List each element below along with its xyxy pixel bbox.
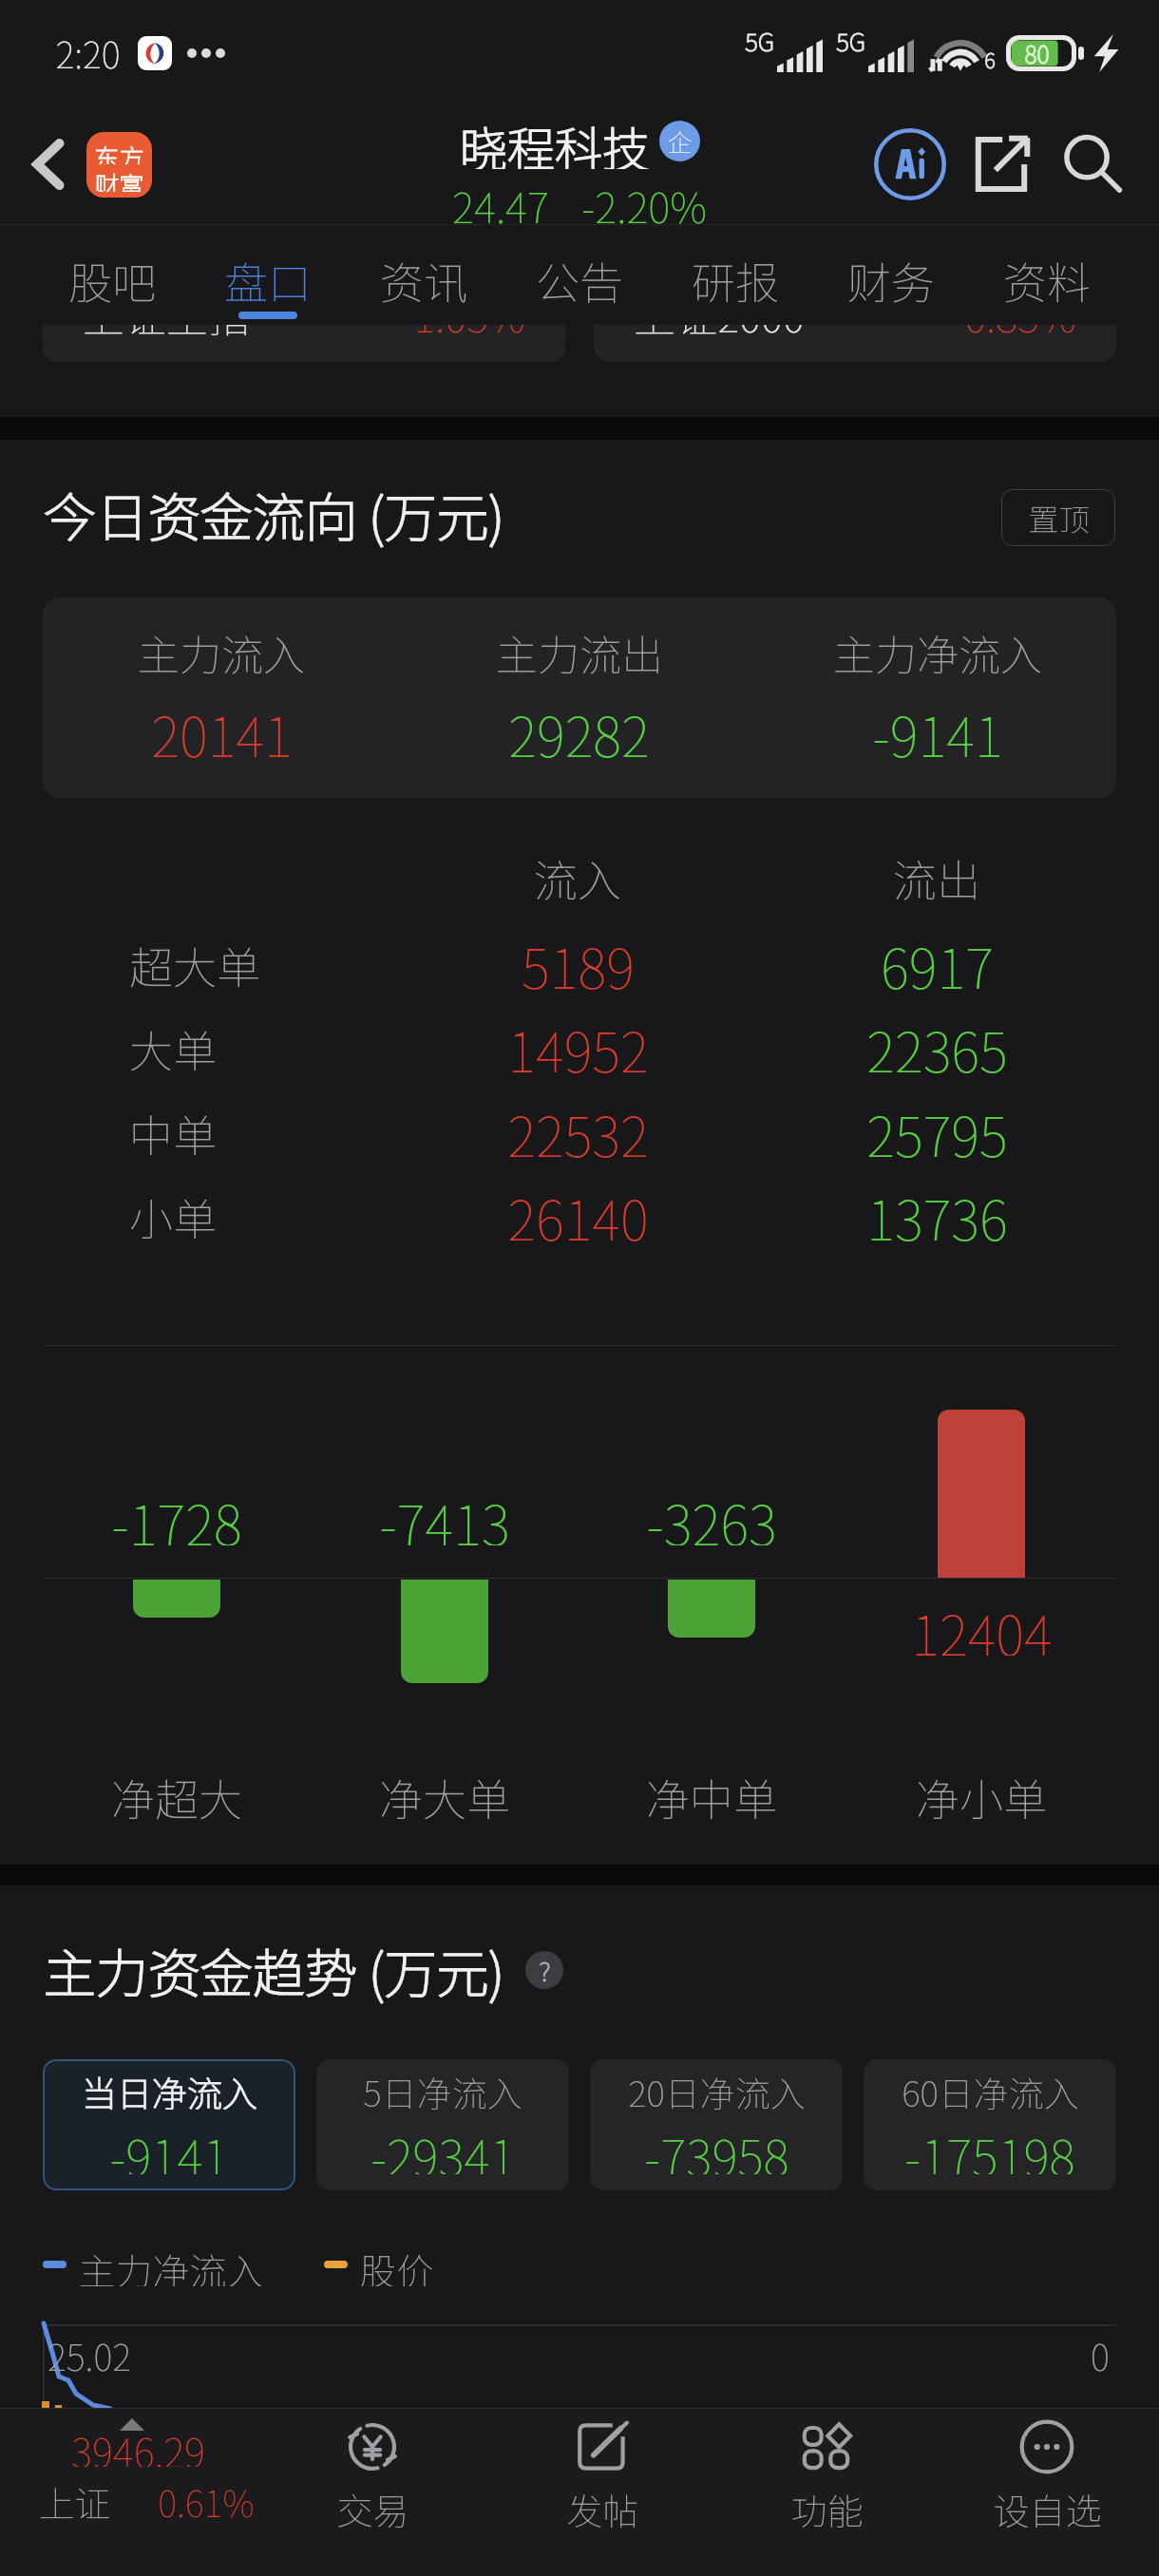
staticText: -9141	[872, 694, 1003, 773]
button[interactable]: 资讯	[346, 224, 502, 325]
staticText: 小单	[129, 1185, 217, 1249]
staticText: 净中单	[646, 1766, 777, 1827]
staticText: -29341	[370, 2119, 516, 2174]
button[interactable]: 置顶	[1001, 489, 1115, 546]
staticText: 东方	[94, 139, 144, 164]
staticText: 6917	[881, 926, 994, 1005]
staticText: 净大单	[379, 1766, 510, 1827]
staticText: -73958	[644, 2119, 789, 2174]
button[interactable]: 设自选	[942, 2408, 1151, 2576]
staticText: 主力净流入	[78, 2243, 264, 2286]
staticText: 主力流出	[496, 622, 663, 683]
staticText: 功能	[790, 2483, 864, 2530]
staticText: 12404	[911, 1593, 1053, 1656]
staticText: 26140	[507, 1178, 649, 1257]
staticText: 净小单	[916, 1766, 1047, 1827]
button[interactable]: 资料	[969, 224, 1125, 325]
staticText: 80	[1024, 36, 1050, 70]
staticText: 今日资金流向 (万元)	[44, 476, 504, 552]
staticText: 晓程科技	[460, 112, 650, 169]
staticText: -9141	[109, 2119, 229, 2174]
staticText: 上证2000	[634, 325, 805, 345]
button[interactable]: 发帖	[498, 2408, 707, 2576]
staticText: 2:20	[55, 27, 121, 79]
button[interactable]: Help	[525, 1951, 563, 1989]
staticText: 上证	[38, 2475, 111, 2523]
staticText: 流入	[534, 846, 621, 901]
staticText: 财务	[847, 249, 935, 304]
button[interactable]: 股吧	[34, 224, 190, 325]
staticText: 资讯	[380, 249, 467, 304]
staticText: 24.47	[452, 175, 549, 224]
staticText: 22365	[866, 1010, 1008, 1089]
button[interactable]: Search	[1047, 119, 1138, 210]
staticText: 超大单	[129, 934, 260, 997]
staticText: 中单	[129, 1102, 217, 1165]
button[interactable]: 功能	[722, 2408, 931, 2576]
staticText: 0.61%	[158, 2475, 255, 2523]
staticText: 0	[1091, 2329, 1110, 2381]
staticText: 设自选	[993, 2483, 1102, 2530]
button[interactable]: 20日净流入	[590, 2059, 843, 2190]
staticText: -7413	[379, 1483, 510, 1545]
button[interactable]: 公告	[502, 224, 657, 325]
staticText: 20141	[151, 694, 293, 773]
staticText: 14952	[507, 1010, 649, 1089]
staticText: 25.02	[47, 2329, 131, 2381]
staticText: 25795	[866, 1094, 1008, 1173]
button[interactable]: 上证主指	[43, 325, 565, 362]
button[interactable]: 超大单	[0, 923, 1159, 1007]
staticText: 财富	[94, 166, 144, 192]
staticText: 0.85%	[964, 325, 1076, 345]
staticText: 5G	[745, 23, 774, 59]
staticText: 资料	[1003, 249, 1091, 304]
staticText: 公告	[536, 249, 623, 304]
button[interactable]: 盘口	[190, 224, 346, 325]
staticText: 发帖	[566, 2483, 639, 2530]
staticText: 大单	[129, 1017, 217, 1081]
staticText: 上证主指	[83, 325, 250, 345]
staticText: ?	[539, 1951, 551, 1989]
staticText: 1.05%	[413, 325, 525, 345]
staticText: 当日净流入	[82, 2066, 257, 2110]
staticText: 净超大	[111, 1766, 242, 1827]
button[interactable]: 交易	[268, 2408, 477, 2576]
staticText: 主力净流入	[833, 622, 1042, 683]
button[interactable]: 当日净流入	[43, 2059, 295, 2190]
staticText: 主力资金趋势 (万元)	[44, 1932, 504, 2008]
staticText: 主力流入	[138, 622, 305, 683]
staticText: 盘口	[224, 249, 312, 304]
staticText: 研报	[692, 249, 779, 304]
staticText: -3263	[646, 1483, 777, 1545]
button[interactable]: East Money logo	[86, 132, 152, 198]
staticText: -2.20%	[581, 175, 707, 224]
button[interactable]: 小单	[0, 1175, 1159, 1259]
staticText: -175198	[904, 2119, 1075, 2174]
staticText: 3946.29	[71, 2421, 205, 2467]
button[interactable]: 3946.29	[0, 2408, 275, 2576]
staticText: 60日净流入	[902, 2066, 1079, 2110]
button[interactable]: AI assistant	[864, 119, 956, 210]
button[interactable]: 5日净流入	[316, 2059, 569, 2190]
staticText: 29282	[508, 694, 650, 773]
staticText: 置顶	[1028, 496, 1090, 540]
staticText: 股价	[359, 2243, 434, 2286]
button[interactable]: 60日净流入	[864, 2059, 1116, 2190]
staticText: -1728	[111, 1483, 242, 1545]
button[interactable]: 研报	[657, 224, 813, 325]
button[interactable]: 财务	[813, 224, 969, 325]
staticText: 交易	[336, 2483, 409, 2530]
button[interactable]: 中单	[0, 1091, 1159, 1175]
staticText: 股吧	[68, 249, 156, 304]
button[interactable]: Share	[956, 119, 1047, 210]
staticText: 13736	[866, 1178, 1008, 1257]
staticText: 5189	[522, 926, 635, 1005]
staticText: 6	[984, 44, 996, 74]
button[interactable]: 上证2000	[594, 325, 1116, 362]
button[interactable]: 大单	[0, 1007, 1159, 1090]
button[interactable]: Back	[19, 126, 80, 202]
staticText: 5G	[836, 23, 865, 59]
staticText: 流出	[893, 846, 980, 901]
staticText: 5日净流入	[363, 2066, 522, 2110]
staticText: 20日净流入	[628, 2066, 806, 2110]
